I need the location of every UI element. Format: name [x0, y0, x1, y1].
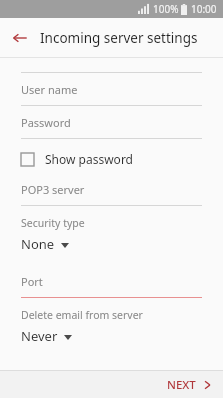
staticText: Password — [21, 115, 71, 130]
staticText: Never — [21, 327, 58, 345]
button[interactable]: Port — [0, 265, 223, 297]
staticText: 100% — [153, 2, 179, 16]
staticText: User name — [21, 82, 78, 97]
button[interactable]: Delete email from server — [0, 308, 223, 345]
staticText: Security type — [21, 216, 85, 230]
button[interactable]: NEXT — [155, 372, 223, 398]
button[interactable]: Show password — [0, 145, 223, 173]
staticText: Incoming server settings — [40, 29, 198, 47]
staticText: None — [21, 235, 55, 253]
staticText: 10:00 — [191, 2, 217, 16]
button[interactable]: Navigate up — [0, 18, 40, 58]
staticText: NEXT — [167, 377, 196, 393]
button[interactable]: Security type — [0, 216, 223, 253]
button[interactable]: User name — [0, 73, 223, 105]
button[interactable]: POP3 server — [0, 173, 223, 205]
staticText: Port — [21, 274, 43, 289]
staticText: Delete email from server — [21, 308, 143, 322]
staticText: Show password — [45, 151, 133, 167]
button[interactable]: Password — [0, 106, 223, 138]
staticText: POP3 server — [21, 182, 85, 197]
